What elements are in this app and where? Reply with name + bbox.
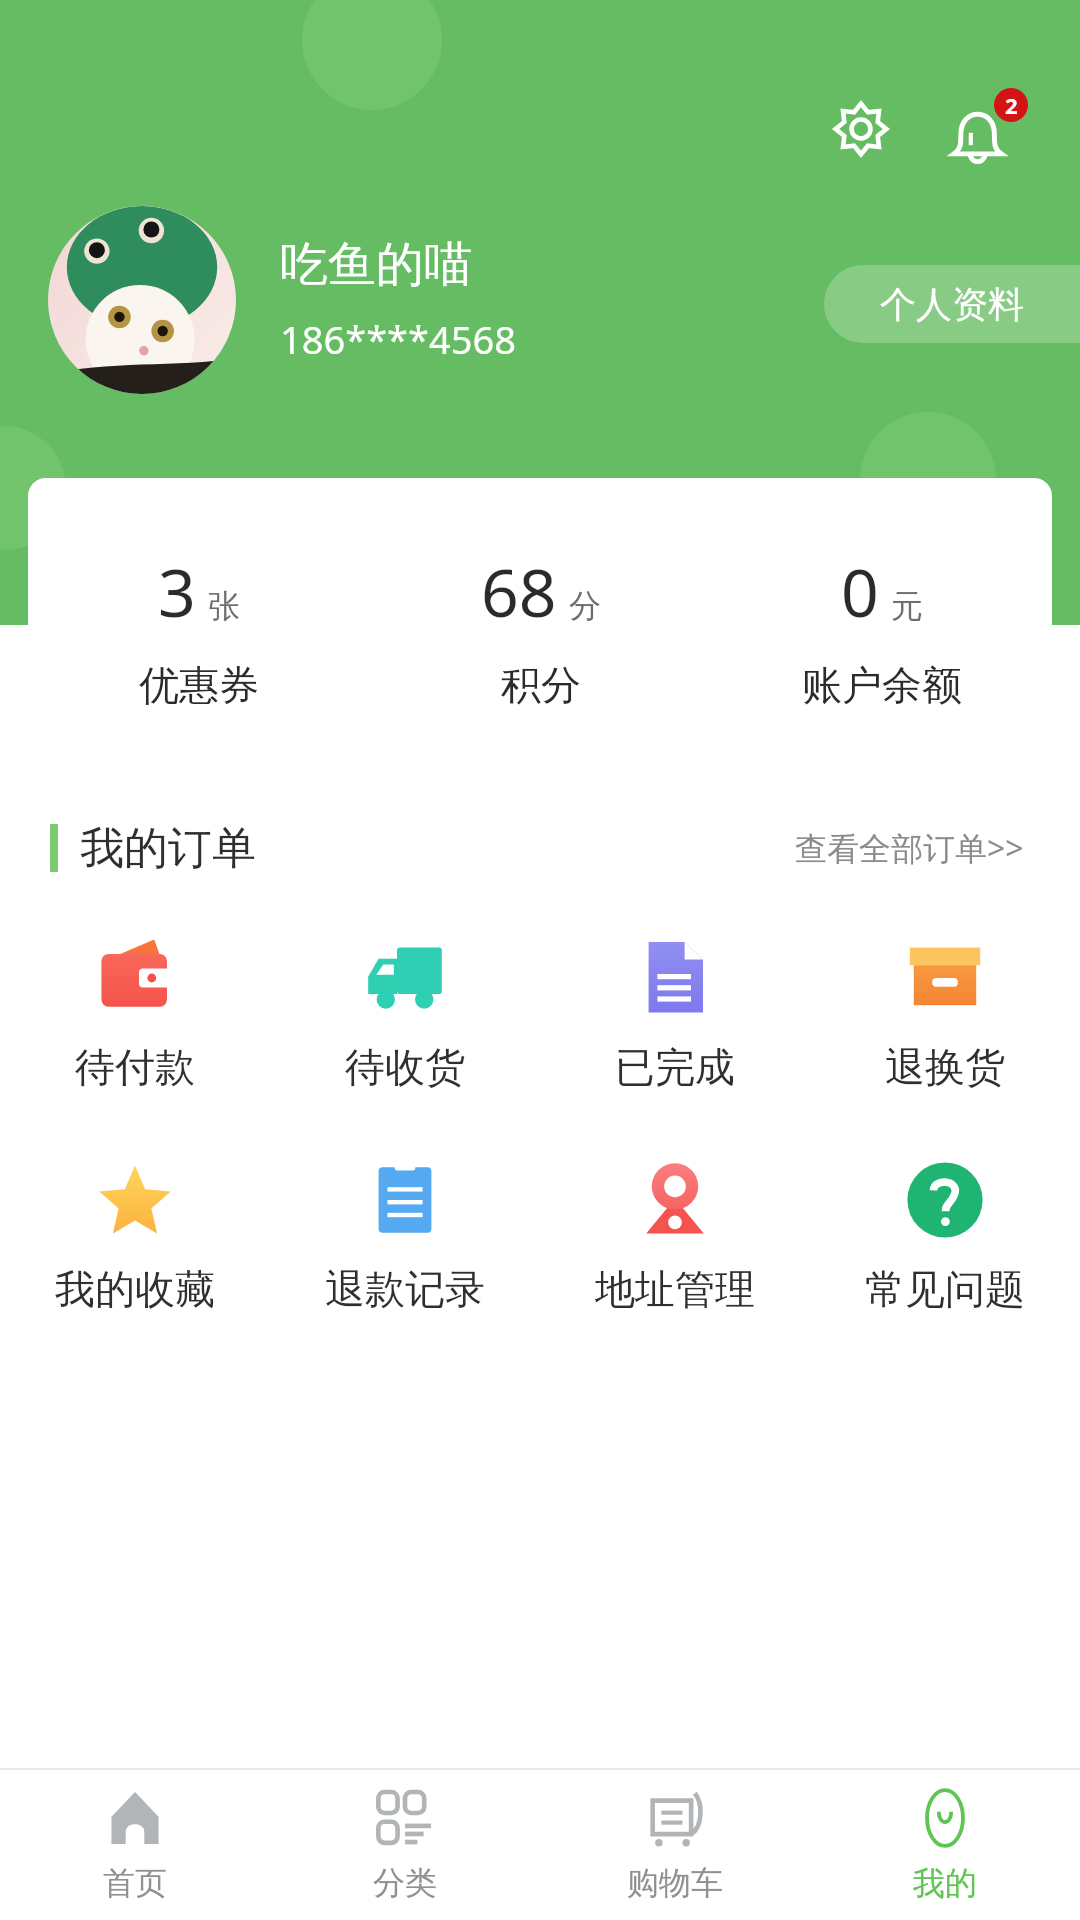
staticText: 常见问题 bbox=[865, 1264, 1025, 1314]
button[interactable]: Notifications bbox=[946, 88, 1028, 170]
staticText: 分类 bbox=[373, 1863, 437, 1903]
staticText: 退款记录 bbox=[325, 1264, 485, 1314]
staticText: 退换货 bbox=[885, 1042, 1005, 1092]
staticText: 个人资料 bbox=[880, 282, 1024, 327]
staticText: 积分 bbox=[501, 660, 581, 710]
staticText: 0 bbox=[841, 546, 879, 636]
button[interactable]: 个人资料 bbox=[824, 265, 1080, 343]
button[interactable]: 我的 bbox=[810, 1770, 1080, 1920]
staticText: 账户余额 bbox=[802, 660, 962, 710]
staticText: 购物车 bbox=[627, 1863, 723, 1903]
button[interactable]: 0 bbox=[711, 546, 1052, 710]
staticText: 我的 bbox=[913, 1863, 977, 1903]
staticText: 分 bbox=[569, 586, 601, 626]
button[interactable]: 待付款 bbox=[0, 932, 270, 1098]
button[interactable]: 退换货 bbox=[810, 932, 1080, 1098]
staticText: 吃鱼的喵 bbox=[280, 235, 472, 295]
staticText: 地址管理 bbox=[595, 1264, 755, 1314]
button[interactable]: 退款记录 bbox=[270, 1154, 540, 1320]
button[interactable]: 购物车 bbox=[540, 1770, 810, 1920]
button[interactable]: Settings bbox=[826, 94, 896, 164]
staticText: 已完成 bbox=[615, 1042, 735, 1092]
staticText: 我的收藏 bbox=[55, 1264, 215, 1314]
staticText: 待收货 bbox=[345, 1042, 465, 1092]
button[interactable]: 已完成 bbox=[540, 932, 810, 1098]
button[interactable]: 分类 bbox=[270, 1770, 540, 1920]
staticText: 元 bbox=[891, 586, 923, 626]
button[interactable]: 我的收藏 bbox=[0, 1154, 270, 1320]
button[interactable]: 68 bbox=[370, 546, 711, 710]
staticText: 2 bbox=[1005, 90, 1018, 120]
button[interactable]: 首页 bbox=[0, 1770, 270, 1920]
staticText: 待付款 bbox=[75, 1042, 195, 1092]
button[interactable]: 常见问题 bbox=[810, 1154, 1080, 1320]
staticText: 186****4568 bbox=[280, 313, 516, 365]
staticText: 查看全部订单>> bbox=[795, 826, 1024, 870]
button[interactable]: 地址管理 bbox=[540, 1154, 810, 1320]
button[interactable]: 查看全部订单>> bbox=[789, 820, 1030, 876]
button[interactable]: 吃鱼的喵 bbox=[48, 206, 516, 394]
staticText: 我的订单 bbox=[80, 821, 256, 876]
staticText: 优惠券 bbox=[139, 660, 259, 710]
button[interactable]: 3 bbox=[28, 546, 370, 710]
staticText: 首页 bbox=[103, 1863, 167, 1903]
staticText: 3 bbox=[158, 546, 196, 636]
staticText: 张 bbox=[208, 586, 240, 626]
staticText: 68 bbox=[481, 546, 557, 636]
button[interactable]: 待收货 bbox=[270, 932, 540, 1098]
